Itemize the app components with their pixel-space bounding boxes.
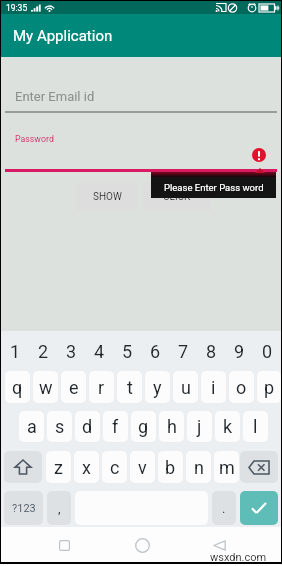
button[interactable]: i <box>201 371 226 403</box>
staticText: t <box>127 377 133 398</box>
button[interactable]: 1 <box>1 338 29 364</box>
staticText: My Application <box>13 27 113 45</box>
staticText: s <box>55 416 65 437</box>
staticText: , <box>58 501 61 516</box>
staticText: o <box>236 377 247 398</box>
staticText: w <box>39 377 53 398</box>
button[interactable]: z <box>46 451 71 483</box>
staticText: f <box>112 416 119 437</box>
button[interactable]: SHOW <box>76 183 138 210</box>
button[interactable]: p <box>257 371 281 403</box>
button[interactable]: h <box>159 411 184 442</box>
staticText: d <box>82 416 93 437</box>
button[interactable]: j <box>187 411 212 442</box>
staticText: 7 <box>178 341 189 362</box>
button[interactable]: g <box>131 411 156 442</box>
button[interactable]: f <box>103 411 128 442</box>
button[interactable]: 5 <box>113 338 141 364</box>
staticText: ?123 <box>12 502 36 515</box>
button[interactable]: b <box>158 451 183 483</box>
button[interactable]: Enter <box>240 491 278 525</box>
staticText: . <box>222 501 226 516</box>
button[interactable]: q <box>5 371 30 403</box>
staticText: y <box>153 377 162 398</box>
staticText: l <box>253 416 258 437</box>
staticText: Please Enter Pass word <box>164 182 264 193</box>
button[interactable]: Home <box>125 531 160 559</box>
button[interactable]: o <box>229 371 254 403</box>
button[interactable]: c <box>102 451 127 483</box>
button[interactable]: 4 <box>85 338 113 364</box>
button[interactable]: ?123 <box>4 491 43 525</box>
button[interactable]: Shift <box>4 451 42 483</box>
button[interactable]: d <box>75 411 100 442</box>
button[interactable]: u <box>173 371 198 403</box>
staticText: e <box>69 377 79 398</box>
other: Error <box>252 148 266 162</box>
staticText: r <box>98 377 105 398</box>
staticText: wsxdn.com <box>210 551 267 564</box>
staticText: c <box>110 457 120 478</box>
button[interactable]: 6 <box>141 338 169 364</box>
staticText: p <box>264 377 275 398</box>
staticText: h <box>167 416 177 437</box>
staticText: q <box>12 377 23 398</box>
button[interactable]: 3 <box>57 338 85 364</box>
staticText: 0 <box>262 341 273 362</box>
button[interactable]: y <box>145 371 170 403</box>
button[interactable]: s <box>47 411 72 442</box>
button[interactable]: CLICK <box>143 183 211 210</box>
button[interactable]: x <box>74 451 99 483</box>
staticText: g <box>138 416 149 437</box>
button[interactable]: 9 <box>225 338 253 364</box>
button[interactable]: . <box>212 491 236 525</box>
staticText: Enter Email id <box>15 89 95 104</box>
staticText: CLICK <box>163 191 191 203</box>
staticText: v <box>138 457 147 478</box>
button[interactable]: a <box>19 411 44 442</box>
staticText: i <box>211 377 216 398</box>
button[interactable]: n <box>186 451 211 483</box>
staticText: 19:35 <box>6 3 28 13</box>
staticText: x <box>82 457 91 478</box>
button[interactable]: r <box>89 371 114 403</box>
staticText: m <box>219 457 235 478</box>
button[interactable]: 0 <box>253 338 281 364</box>
button[interactable]: 2 <box>29 338 57 364</box>
staticText: Password <box>15 134 54 144</box>
staticText: 8 <box>206 341 217 362</box>
button[interactable]: , <box>47 491 71 525</box>
button[interactable]: t <box>117 371 142 403</box>
staticText: 9 <box>234 341 245 362</box>
staticText: n <box>194 457 204 478</box>
staticText: 5 <box>122 341 133 362</box>
staticText: j <box>197 416 202 437</box>
staticText: SHOW <box>93 191 122 203</box>
staticText: b <box>165 457 176 478</box>
button[interactable]: w <box>33 371 58 403</box>
staticText: 1 <box>10 341 21 362</box>
button[interactable]: Recents <box>47 531 82 559</box>
staticText: u <box>181 377 191 398</box>
staticText: 4 <box>94 341 105 362</box>
button[interactable]: m <box>214 451 239 483</box>
staticText: k <box>223 416 233 437</box>
button[interactable]: 8 <box>197 338 225 364</box>
button[interactable]: Backspace <box>240 451 278 483</box>
button[interactable]: v <box>130 451 155 483</box>
button[interactable]: e <box>61 371 86 403</box>
staticText: a <box>27 416 37 437</box>
staticText: z <box>54 457 63 478</box>
staticText: 6 <box>150 341 161 362</box>
button[interactable]: 7 <box>169 338 197 364</box>
button[interactable]: l <box>243 411 268 442</box>
staticText: 2 <box>38 341 49 362</box>
staticText: 3 <box>66 341 77 362</box>
button[interactable]: k <box>215 411 240 442</box>
button[interactable]: Back <box>202 531 237 559</box>
